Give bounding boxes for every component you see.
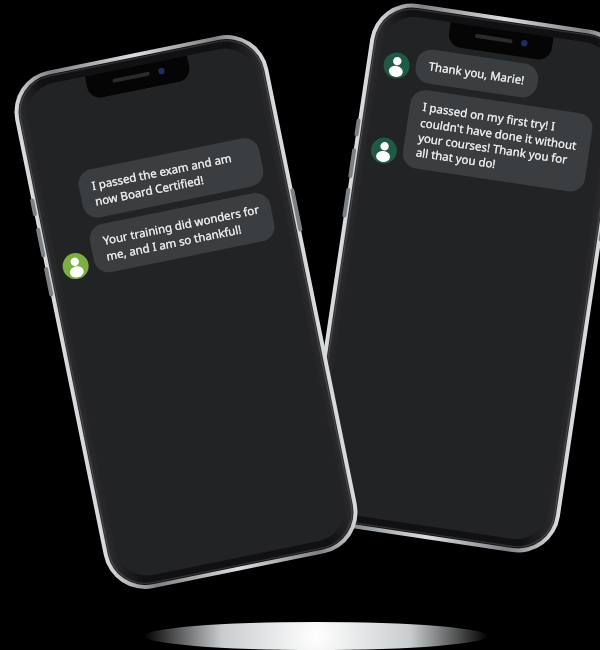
button[interactable]: Two phones showing student testimonial c… bbox=[0, 0, 600, 650]
